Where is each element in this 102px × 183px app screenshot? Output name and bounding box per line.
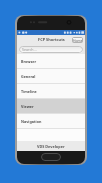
button[interactable]: Home [72,37,83,43]
button[interactable]: Navigation [17,114,85,129]
staticText: Search ... [22,47,38,52]
staticText: Navigation [21,119,42,124]
staticText: Browser [21,59,37,64]
button[interactable]: Viewer [17,99,85,114]
button[interactable]: General [17,69,85,84]
staticText: FCP Shortcuts [38,37,65,42]
staticText: Timeline [21,89,37,94]
button[interactable]: Browser [17,54,85,69]
button[interactable]: Timeline [17,84,85,99]
button[interactable]: VDS Developer [17,141,85,151]
button[interactable]: Search ... [19,46,83,53]
staticText: VDS Developer [37,144,65,149]
staticText: General [21,74,36,79]
button[interactable]: Home [41,153,61,161]
staticText: Home [73,38,83,43]
staticText: Viewer [21,104,34,109]
